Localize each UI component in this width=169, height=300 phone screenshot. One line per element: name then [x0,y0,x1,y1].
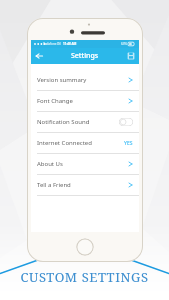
staticText: 11:48 AM [63,42,77,46]
button[interactable]: Home [76,238,94,256]
button[interactable]: Back [33,50,45,62]
staticText: CUSTOM SETTINGS [20,268,149,286]
staticText: About Us [37,160,63,168]
staticText: Vodafone IN [43,42,61,46]
staticText: 63% [121,42,127,46]
button[interactable]: Tell a Friend [31,175,139,195]
staticText: Internet Connected [37,139,92,147]
button[interactable]: Save [125,50,137,62]
staticText: Version summary [37,76,87,84]
staticText: YES [124,140,133,147]
staticText: Tell a Friend [37,181,71,189]
button[interactable]: Notification Sound toggle [119,118,133,126]
button[interactable]: Version summary [31,70,139,90]
staticText: Notification Sound [37,118,90,126]
button[interactable]: Font Change [31,91,139,111]
button[interactable]: Notification Sound [31,112,139,132]
staticText: Font Change [37,97,73,105]
staticText: Settings [71,51,99,61]
button[interactable]: Internet Connected [31,133,139,153]
button[interactable]: About Us [31,154,139,174]
